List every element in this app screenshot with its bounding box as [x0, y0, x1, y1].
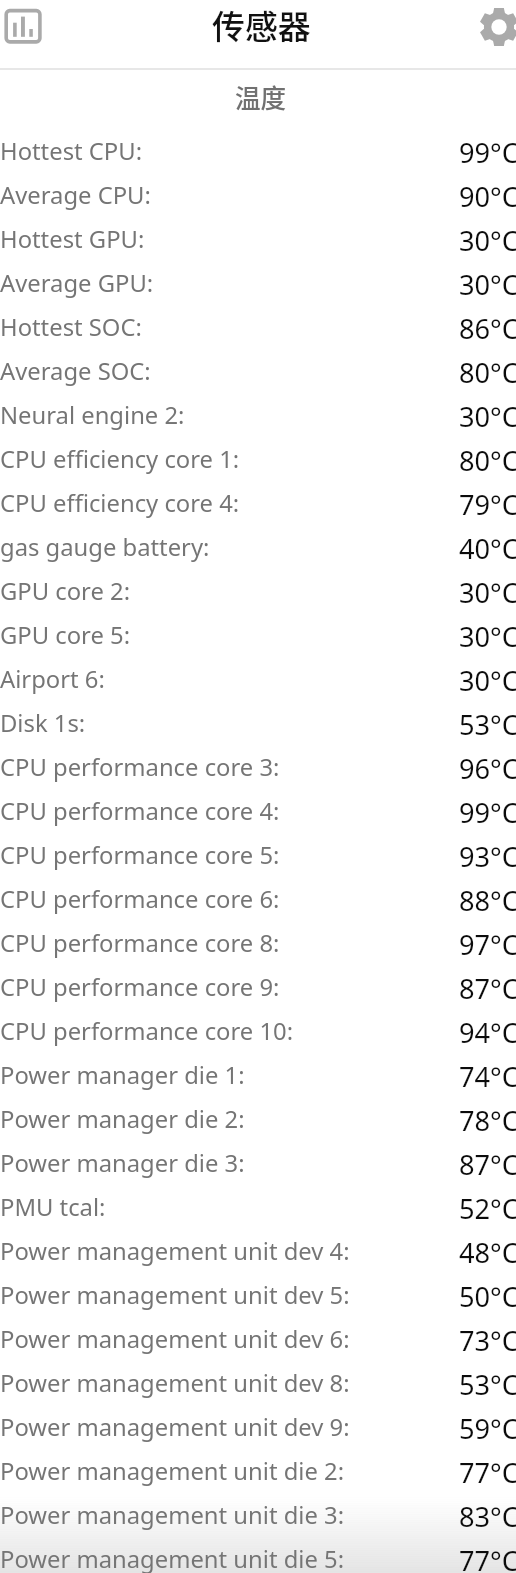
- staticText: 温度: [235, 78, 287, 115]
- staticText: Power management unit dev 8:: [0, 1367, 350, 1399]
- staticText: 94°C: [459, 1014, 516, 1051]
- button[interactable]: gas gauge battery:: [0, 525, 516, 569]
- staticText: 88°C: [459, 882, 516, 919]
- staticText: Neural engine 2:: [0, 399, 185, 431]
- staticText: Power manager die 3:: [0, 1147, 245, 1179]
- staticText: 30°C: [459, 398, 516, 435]
- button[interactable]: CPU efficiency core 1:: [0, 437, 516, 481]
- button[interactable]: PMU tcal:: [0, 1185, 516, 1229]
- staticText: 79°C: [459, 486, 516, 523]
- staticText: CPU efficiency core 1:: [0, 443, 240, 475]
- button[interactable]: Average CPU:: [0, 173, 516, 217]
- staticText: 48°C: [459, 1234, 516, 1271]
- button[interactable]: Power management unit dev 4:: [0, 1229, 516, 1273]
- button[interactable]: CPU performance core 9:: [0, 965, 516, 1009]
- button[interactable]: Power management unit die 3:: [0, 1493, 516, 1537]
- button[interactable]: CPU performance core 4:: [0, 789, 516, 833]
- button[interactable]: Average SOC:: [0, 349, 516, 393]
- staticText: 77°C: [459, 1454, 516, 1491]
- staticText: Average SOC:: [0, 355, 151, 387]
- button[interactable]: Hottest CPU:: [0, 129, 516, 173]
- button[interactable]: Power manager die 2:: [0, 1097, 516, 1141]
- staticText: 87°C: [459, 1146, 516, 1183]
- staticText: 53°C: [459, 706, 516, 743]
- button[interactable]: Average GPU:: [0, 261, 516, 305]
- staticText: 80°C: [459, 354, 516, 391]
- button[interactable]: Airport 6:: [0, 657, 516, 701]
- staticText: Power management unit dev 5:: [0, 1279, 350, 1311]
- button[interactable]: Power manager die 1:: [0, 1053, 516, 1097]
- staticText: 90°C: [459, 178, 516, 215]
- staticText: 52°C: [459, 1190, 516, 1227]
- button[interactable]: CPU efficiency core 4:: [0, 481, 516, 525]
- staticText: Airport 6:: [0, 663, 105, 695]
- staticText: Power management unit die 2:: [0, 1455, 345, 1487]
- staticText: 30°C: [459, 266, 516, 303]
- staticText: 30°C: [459, 618, 516, 655]
- staticText: CPU performance core 10:: [0, 1015, 294, 1047]
- staticText: 86°C: [459, 310, 516, 347]
- button[interactable]: Power management unit die 2:: [0, 1449, 516, 1493]
- staticText: CPU performance core 5:: [0, 839, 280, 871]
- button[interactable]: Power management unit dev 5:: [0, 1273, 516, 1317]
- staticText: CPU performance core 4:: [0, 795, 280, 827]
- staticText: Power manager die 1:: [0, 1059, 245, 1091]
- staticText: Power management unit die 5:: [0, 1543, 345, 1573]
- button[interactable]: Hottest GPU:: [0, 217, 516, 261]
- button[interactable]: GPU core 5:: [0, 613, 516, 657]
- staticText: 传感器: [212, 1, 311, 49]
- staticText: 40°C: [459, 530, 516, 567]
- button[interactable]: CPU performance core 10:: [0, 1009, 516, 1053]
- staticText: 30°C: [459, 662, 516, 699]
- staticText: Average GPU:: [0, 267, 154, 299]
- staticText: Hottest CPU:: [0, 135, 143, 167]
- staticText: Power manager die 2:: [0, 1103, 245, 1135]
- staticText: CPU performance core 3:: [0, 751, 280, 783]
- staticText: Average CPU:: [0, 179, 151, 211]
- staticText: 93°C: [459, 838, 516, 875]
- button[interactable]: Power management unit dev 8:: [0, 1361, 516, 1405]
- staticText: CPU efficiency core 4:: [0, 487, 240, 519]
- staticText: 87°C: [459, 970, 516, 1007]
- button[interactable]: Power manager die 3:: [0, 1141, 516, 1185]
- button[interactable]: CPU performance core 8:: [0, 921, 516, 965]
- button[interactable]: Settings: [475, 3, 516, 51]
- button[interactable]: Neural engine 2:: [0, 393, 516, 437]
- staticText: 96°C: [459, 750, 516, 787]
- staticText: 97°C: [459, 926, 516, 963]
- button[interactable]: Power management unit dev 9:: [0, 1405, 516, 1449]
- button[interactable]: CPU performance core 6:: [0, 877, 516, 921]
- button[interactable]: Statistics: [0, 0, 48, 48]
- staticText: 30°C: [459, 574, 516, 611]
- staticText: GPU core 2:: [0, 575, 131, 607]
- staticText: 77°C: [459, 1542, 516, 1573]
- button[interactable]: GPU core 2:: [0, 569, 516, 613]
- staticText: CPU performance core 9:: [0, 971, 280, 1003]
- staticText: Disk 1s:: [0, 707, 86, 739]
- staticText: 78°C: [459, 1102, 516, 1139]
- staticText: gas gauge battery:: [0, 531, 210, 563]
- button[interactable]: Hottest SOC:: [0, 305, 516, 349]
- staticText: Power management unit dev 6:: [0, 1323, 350, 1355]
- staticText: Power management unit dev 4:: [0, 1235, 350, 1267]
- staticText: Hottest SOC:: [0, 311, 142, 343]
- button[interactable]: Disk 1s:: [0, 701, 516, 745]
- staticText: 74°C: [459, 1058, 516, 1095]
- staticText: Power management unit die 3:: [0, 1499, 345, 1531]
- button[interactable]: Power management unit die 5:: [0, 1537, 516, 1573]
- staticText: 53°C: [459, 1366, 516, 1403]
- staticText: 80°C: [459, 442, 516, 479]
- staticText: 83°C: [459, 1498, 516, 1535]
- button[interactable]: 温度: [0, 70, 516, 130]
- button[interactable]: CPU performance core 3:: [0, 745, 516, 789]
- staticText: 30°C: [459, 222, 516, 259]
- staticText: PMU tcal:: [0, 1191, 106, 1223]
- button[interactable]: Power management unit dev 6:: [0, 1317, 516, 1361]
- staticText: 99°C: [459, 794, 516, 831]
- staticText: 50°C: [459, 1278, 516, 1315]
- staticText: Hottest GPU:: [0, 223, 145, 255]
- staticText: 59°C: [459, 1410, 516, 1447]
- staticText: CPU performance core 8:: [0, 927, 280, 959]
- button[interactable]: CPU performance core 5:: [0, 833, 516, 877]
- staticText: 99°C: [459, 134, 516, 171]
